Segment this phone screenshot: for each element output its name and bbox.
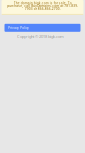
- staticText: Copyright © 2018 bigk.com: [17, 34, 64, 39]
- staticText: The domain bigk.com is for sale. To purc…: [7, 1, 78, 11]
- staticText: Privacy Policy: [8, 26, 29, 30]
- button[interactable]: Privacy Policy: [4, 24, 80, 32]
